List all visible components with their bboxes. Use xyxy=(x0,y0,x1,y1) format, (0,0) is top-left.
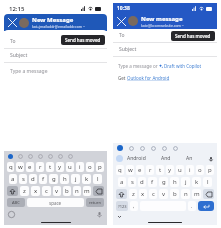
button[interactable]: x xyxy=(139,189,147,199)
button[interactable]: a xyxy=(118,177,126,187)
button[interactable]: space xyxy=(27,198,84,207)
button[interactable]: i xyxy=(186,165,194,175)
button[interactable]: f xyxy=(39,174,47,184)
button[interactable]: h xyxy=(60,174,69,184)
button[interactable]: m xyxy=(83,186,91,196)
button[interactable]: , xyxy=(130,201,138,211)
button[interactable]: l xyxy=(93,174,102,184)
button[interactable]: m xyxy=(192,189,201,199)
button[interactable]: Emoji xyxy=(8,211,15,218)
button[interactable]: v xyxy=(53,186,61,196)
button[interactable]: Tool xyxy=(48,154,53,159)
button[interactable]: o xyxy=(196,165,204,175)
staticText: w xyxy=(18,163,23,171)
button[interactable]: n xyxy=(73,186,81,196)
button[interactable]: j xyxy=(181,177,190,187)
staticText: z xyxy=(132,190,135,198)
button[interactable] xyxy=(7,186,18,196)
button[interactable]: . xyxy=(188,201,196,211)
button[interactable]: k xyxy=(192,177,201,187)
button[interactable]: u xyxy=(176,165,184,175)
button[interactable]: c xyxy=(42,186,51,196)
button[interactable]: z xyxy=(129,189,137,199)
button[interactable]: return xyxy=(86,198,104,207)
button[interactable]: f xyxy=(148,177,157,187)
button[interactable]: k xyxy=(82,174,91,184)
button[interactable]: b xyxy=(63,186,71,196)
button[interactable]: e xyxy=(26,162,34,172)
staticText: To xyxy=(10,38,16,45)
button[interactable]: Close xyxy=(8,18,17,27)
button[interactable]: Close xyxy=(117,17,126,26)
button[interactable]: q xyxy=(116,165,124,175)
button[interactable]: l xyxy=(203,177,212,187)
button[interactable]: c xyxy=(149,189,157,199)
button[interactable]: g xyxy=(49,174,58,184)
button[interactable]: o xyxy=(86,162,94,172)
button[interactable] xyxy=(203,189,214,199)
button[interactable]: i xyxy=(76,162,84,172)
staticText: j xyxy=(75,175,77,183)
button[interactable]: x xyxy=(31,186,40,196)
button[interactable]: j xyxy=(71,174,80,184)
button[interactable]: ABC xyxy=(7,198,25,207)
button[interactable]: Voice input xyxy=(208,156,214,162)
button[interactable] xyxy=(116,189,127,199)
staticText: New message xyxy=(141,15,183,23)
button[interactable]: Tool xyxy=(173,146,178,151)
button[interactable]: Tool xyxy=(129,146,134,151)
button[interactable]: d xyxy=(138,177,146,187)
button[interactable]: w xyxy=(126,165,134,175)
button[interactable]: q xyxy=(7,162,14,172)
staticText: . xyxy=(191,203,193,210)
button[interactable] xyxy=(93,186,104,196)
staticText: i xyxy=(189,166,191,174)
button[interactable]: Tool xyxy=(140,146,145,151)
button[interactable]: p xyxy=(96,162,104,172)
button[interactable]: z xyxy=(20,186,29,196)
button[interactable]: d xyxy=(29,174,37,184)
button[interactable]: Android xyxy=(127,155,146,162)
button[interactable]: t xyxy=(46,162,54,172)
button[interactable]: g xyxy=(159,177,168,187)
button[interactable]: h xyxy=(170,177,179,187)
button[interactable]: b xyxy=(170,189,179,199)
button[interactable]: y xyxy=(166,165,174,175)
button[interactable]: y xyxy=(56,162,64,172)
button[interactable]: Tool xyxy=(162,146,167,151)
button[interactable]: r xyxy=(36,162,44,172)
button[interactable]: Tool xyxy=(28,154,33,159)
button[interactable]: Tool xyxy=(58,154,63,159)
button[interactable]: e xyxy=(136,165,144,175)
button[interactable]: u xyxy=(66,162,74,172)
button[interactable]: Tool xyxy=(18,154,23,159)
button[interactable]: s xyxy=(19,174,27,184)
button[interactable]: Enter xyxy=(198,201,214,211)
button[interactable]: Send has moved xyxy=(65,37,101,43)
button[interactable]: Settings xyxy=(117,145,123,151)
staticText: h xyxy=(173,178,177,186)
button[interactable]: Clipboard xyxy=(116,155,123,162)
button[interactable]: a xyxy=(9,174,17,184)
button[interactable]: ?123 xyxy=(116,201,128,211)
button[interactable]: Tool xyxy=(38,154,43,159)
button[interactable]: And xyxy=(161,155,171,162)
button[interactable]: p xyxy=(206,165,214,175)
button[interactable]: Dictation xyxy=(96,211,103,218)
button[interactable]: n xyxy=(181,189,190,199)
button[interactable]: Copilot xyxy=(8,154,13,159)
button[interactable]: r xyxy=(146,165,154,175)
button[interactable]: An xyxy=(186,155,193,162)
button[interactable]: t xyxy=(156,165,164,175)
button[interactable]: Hide keyboard xyxy=(117,214,122,219)
button[interactable]: s xyxy=(128,177,136,187)
staticText: space xyxy=(49,200,62,206)
button[interactable]: Tool xyxy=(151,146,156,151)
button[interactable]: Tool xyxy=(68,154,73,159)
button[interactable]: Send has moved xyxy=(175,33,211,39)
button[interactable]: v xyxy=(159,189,168,199)
button[interactable]: w xyxy=(16,162,24,172)
staticText: x xyxy=(34,187,38,195)
